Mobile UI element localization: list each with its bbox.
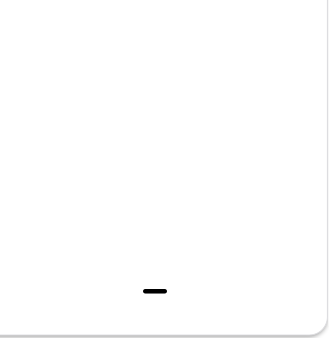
button[interactable]: Drag indicator xyxy=(143,289,167,293)
